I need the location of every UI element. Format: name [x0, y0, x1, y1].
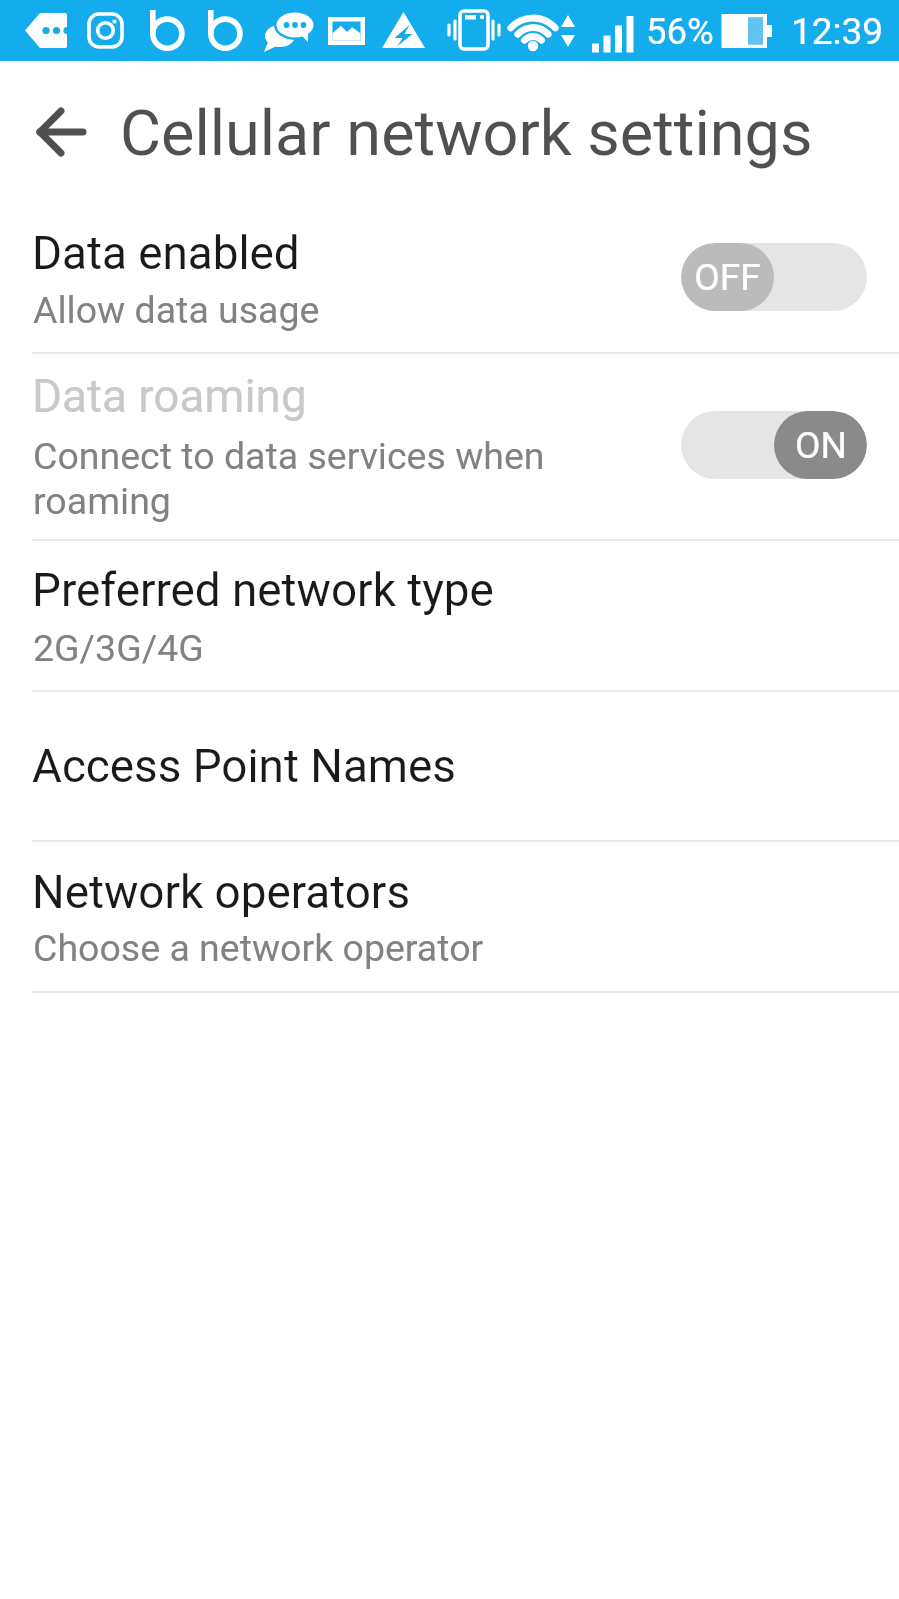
button[interactable]: Access Point Names	[0, 692, 899, 840]
staticText: Connect to data services when roaming	[33, 434, 545, 523]
staticText: Data enabled	[32, 227, 300, 281]
staticText: Network operators	[32, 866, 411, 920]
staticText: Cellular network settings	[120, 97, 813, 171]
staticText: 12:39	[791, 10, 884, 53]
staticText: ON	[795, 424, 847, 467]
button[interactable]: Back	[22, 94, 98, 170]
button[interactable]: Network operators	[0, 842, 899, 991]
button[interactable]: Data roaming	[0, 354, 899, 539]
button[interactable]: Preferred network type	[0, 541, 899, 690]
staticText: Choose a network operator	[33, 926, 484, 970]
staticText: 2G/3G/4G	[33, 626, 204, 670]
staticText: Preferred network type	[32, 564, 494, 618]
button[interactable]: Switch off	[681, 243, 867, 311]
staticText: Data roaming	[32, 370, 307, 424]
button[interactable]: Data enabled	[0, 186, 899, 352]
staticText: 56%	[646, 10, 714, 53]
staticText: OFF	[694, 256, 761, 299]
staticText: Allow data usage	[33, 288, 320, 332]
staticText: Access Point Names	[32, 740, 456, 794]
button[interactable]: Switch on	[681, 411, 867, 479]
